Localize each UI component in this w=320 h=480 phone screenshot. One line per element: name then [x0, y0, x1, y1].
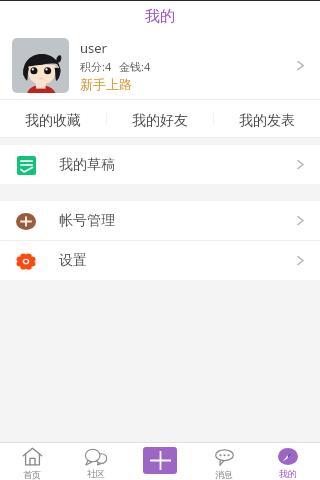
staticText: 我的	[145, 7, 175, 26]
button[interactable]: 我的	[256, 443, 320, 480]
button[interactable]: 帐号管理	[0, 201, 320, 240]
staticText: user	[80, 39, 107, 57]
staticText: 帐号管理	[59, 212, 115, 230]
button[interactable]: 消息	[192, 443, 256, 480]
staticText: 我的好友	[132, 112, 188, 130]
button[interactable]: 社区	[64, 443, 128, 480]
staticText: 首页	[23, 469, 41, 480]
staticText: 我的草稿	[59, 156, 115, 174]
button[interactable]: 我的发表	[214, 100, 320, 137]
staticText: 我的发表	[239, 112, 295, 130]
button[interactable]: 我的好友	[107, 100, 213, 137]
button[interactable]: 我的收藏	[0, 100, 106, 137]
button[interactable]: user	[0, 32, 320, 99]
staticText: 设置	[59, 252, 87, 270]
button[interactable]: 首页	[0, 443, 64, 480]
staticText: 消息	[215, 469, 233, 480]
button[interactable]: 我的草稿	[0, 145, 320, 184]
button[interactable]: 设置	[0, 241, 320, 280]
staticText: 社区	[87, 468, 105, 479]
staticText: 金钱:4	[119, 59, 151, 74]
staticText: 新手上路	[80, 76, 132, 92]
staticText: 我的	[279, 468, 297, 479]
staticText: 积分:4	[80, 59, 112, 74]
button[interactable]: Add post	[128, 443, 192, 480]
staticText: 我的收藏	[25, 112, 81, 130]
